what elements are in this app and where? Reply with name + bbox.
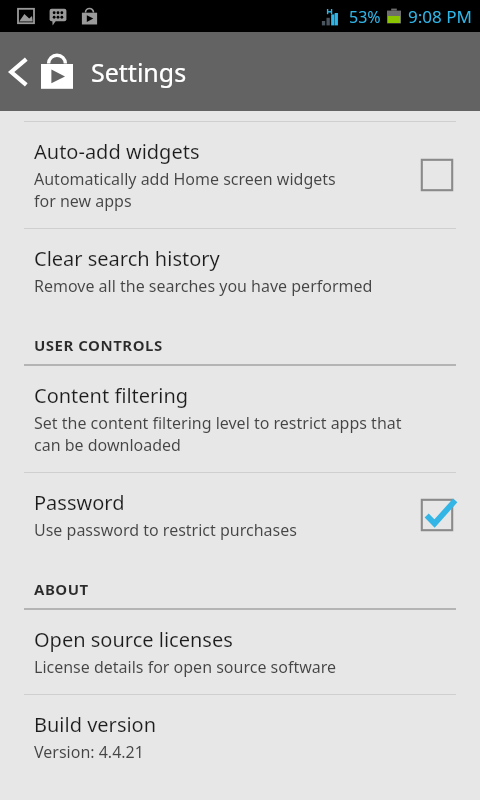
staticText: Use password to restrict purchases — [34, 519, 297, 541]
staticText: Automatically add Home screen widgets fo… — [34, 168, 336, 212]
staticText: Password — [34, 489, 125, 516]
staticText: Content filtering — [34, 382, 189, 409]
staticText: License details for open source software — [34, 656, 337, 678]
staticText: USER CONTROLS — [34, 335, 163, 355]
button[interactable]: Build version — [0, 695, 480, 779]
button[interactable]: Content filtering — [0, 366, 480, 472]
staticText: ABOUT — [34, 579, 89, 599]
staticText: 9:08 PM — [408, 5, 472, 28]
staticText: Settings — [91, 55, 187, 89]
staticText: Remove all the searches you have perform… — [34, 275, 373, 297]
staticText: Version: 4.4.21 — [34, 741, 144, 763]
button[interactable]: Navigate up — [0, 32, 81, 111]
button[interactable]: Checked — [418, 496, 456, 534]
button[interactable]: Auto-add widgets — [0, 122, 480, 228]
staticText: Open source licenses — [34, 626, 233, 653]
button[interactable]: Open source licenses — [0, 610, 480, 694]
staticText: 53% — [349, 6, 381, 28]
staticText: Set the content filtering level to restr… — [34, 412, 402, 456]
staticText: Auto-add widgets — [34, 138, 200, 165]
button[interactable]: Clear search history — [0, 229, 480, 313]
staticText: Build version — [34, 711, 157, 738]
button[interactable]: Password — [0, 473, 480, 557]
button[interactable]: Unchecked — [418, 156, 456, 194]
staticText: Clear search history — [34, 245, 220, 272]
